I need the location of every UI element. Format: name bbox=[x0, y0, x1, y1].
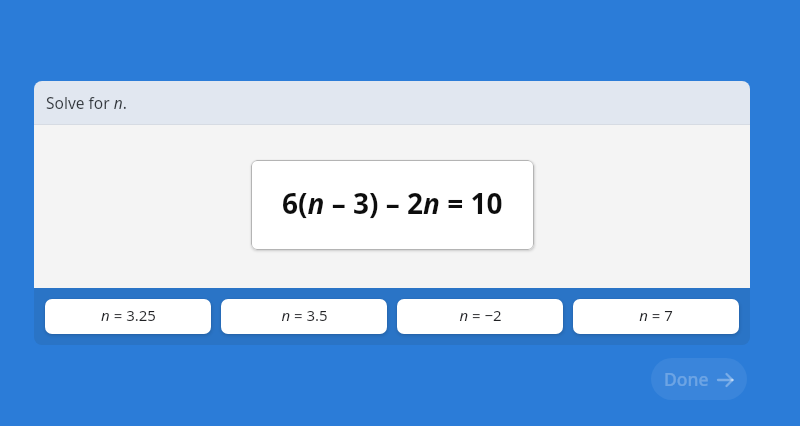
staticText: 6(n – 3) – 2n = 10 bbox=[282, 184, 503, 222]
button[interactable]: Done bbox=[651, 358, 747, 400]
button[interactable]: n = 7 bbox=[573, 299, 739, 334]
staticText: n = −2 bbox=[459, 305, 502, 325]
button[interactable]: n = 3.5 bbox=[221, 299, 387, 334]
staticText: n = 3.5 bbox=[281, 305, 328, 325]
staticText: Done bbox=[664, 367, 709, 391]
button[interactable]: n = 3.25 bbox=[45, 299, 211, 334]
staticText: Solve for n. bbox=[46, 92, 127, 113]
staticText: n = 7 bbox=[639, 305, 673, 325]
button[interactable]: n = −2 bbox=[397, 299, 563, 334]
staticText: n = 3.25 bbox=[101, 305, 156, 325]
other: Forward arrow bbox=[717, 371, 734, 388]
